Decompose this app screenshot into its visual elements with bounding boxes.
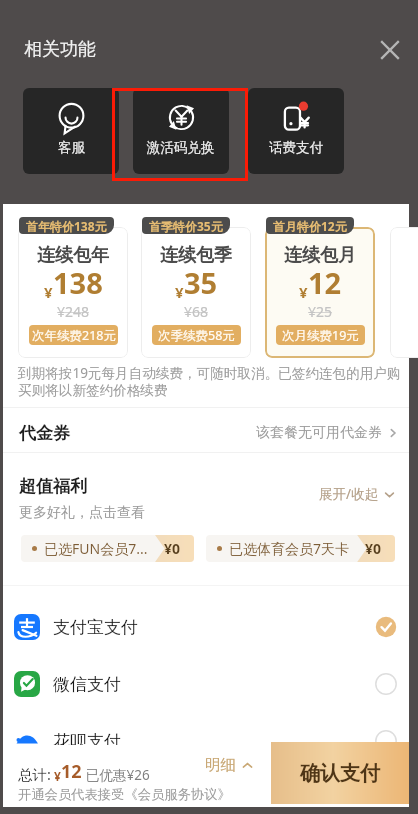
- staticText: 明细: [205, 755, 236, 775]
- button[interactable]: 已选FUN会员7...: [21, 535, 194, 562]
- button[interactable]: 客服: [23, 88, 119, 174]
- staticText: 相关功能: [24, 38, 96, 61]
- staticText: ¥0: [164, 539, 181, 558]
- staticText: 开通会员代表接受《会员服务协议》: [18, 786, 231, 803]
- staticText: 代金券: [19, 423, 70, 444]
- staticText: 首年特价138元: [26, 218, 107, 234]
- staticText: 话费支付: [269, 139, 323, 156]
- staticText: ¥: [299, 282, 308, 302]
- staticText: 展开/收起: [319, 485, 379, 503]
- button[interactable]: 连续包年: [18, 227, 128, 358]
- staticText: ¥: [54, 768, 61, 784]
- staticText: 138: [53, 263, 103, 302]
- button[interactable]: 确认支付: [271, 742, 409, 804]
- button[interactable]: 已选体育会员7天卡: [206, 535, 395, 562]
- staticText: 更多好礼，点击查看: [19, 504, 145, 522]
- staticText: 激活码兑换: [147, 139, 215, 156]
- staticText: 次月续费19元: [282, 327, 359, 344]
- button[interactable]: 花呗支付: [3, 718, 409, 764]
- staticText: 已优惠¥26: [86, 766, 150, 784]
- staticText: 到期将按19元每月自动续费，可随时取消。已签约连包的用户购买则将以新签约价格续费: [18, 363, 410, 399]
- staticText: 已选FUN会员7...: [44, 539, 148, 558]
- button[interactable]: 超值福利: [3, 456, 409, 530]
- button[interactable]: 连续包月: [265, 227, 375, 358]
- staticText: ¥0: [365, 539, 382, 558]
- button[interactable]: 微信支付: [3, 661, 409, 707]
- button[interactable]: 连续包季: [141, 227, 251, 358]
- staticText: ¥248: [18, 302, 128, 321]
- button[interactable]: 明细: [205, 755, 254, 775]
- staticText: 微信支付: [53, 674, 121, 695]
- staticText: 连续包年: [18, 244, 128, 267]
- staticText: ¥68: [141, 302, 251, 321]
- staticText: 总计:: [18, 764, 51, 784]
- staticText: 确认支付: [300, 761, 380, 786]
- staticText: 首季特价35元: [149, 218, 223, 234]
- staticText: 连续包月: [265, 244, 375, 267]
- staticText: 12: [308, 263, 342, 302]
- staticText: 首月特价12元: [273, 218, 347, 234]
- staticText: 该套餐无可用代金券: [256, 424, 382, 442]
- staticText: 连续包季: [141, 244, 251, 267]
- staticText: 支付宝支付: [53, 617, 138, 638]
- button[interactable]: 话费支付: [248, 88, 344, 174]
- button[interactable]: 激活码兑换: [133, 88, 229, 174]
- staticText: ¥: [175, 282, 184, 302]
- button[interactable]: 代金券: [3, 411, 409, 455]
- staticText: ¥25: [265, 302, 375, 321]
- staticText: 35: [184, 263, 218, 302]
- staticText: 12: [61, 759, 82, 784]
- staticText: 已选体育会员7天卡: [229, 539, 350, 558]
- staticText: 客服: [58, 139, 85, 156]
- button[interactable]: Close: [372, 32, 408, 68]
- staticText: ¥: [44, 282, 53, 302]
- staticText: 次年续费218元: [32, 327, 116, 344]
- staticText: 花呗支付: [53, 731, 121, 752]
- staticText: 次季续费58元: [158, 327, 235, 344]
- button[interactable]: 支付宝支付: [3, 604, 409, 650]
- staticText: 超值福利: [19, 476, 87, 497]
